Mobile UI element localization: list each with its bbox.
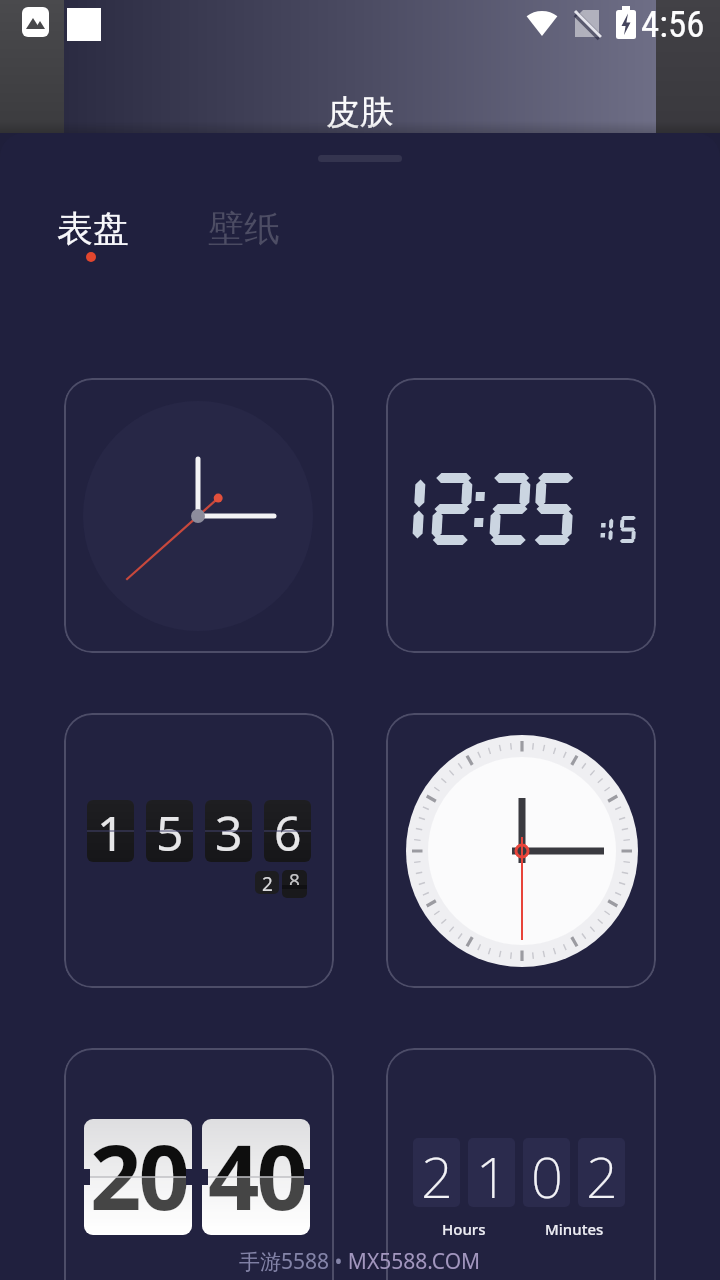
staticText: 表盘 [57, 206, 129, 251]
staticText: Hours [442, 1219, 486, 1239]
staticText: 0 [531, 1138, 563, 1207]
staticText: 2 [262, 871, 273, 894]
staticText: Minutes [545, 1219, 604, 1239]
button[interactable] [386, 378, 656, 653]
staticText: 20 [90, 1119, 187, 1230]
staticText: 2 [586, 1138, 618, 1207]
button[interactable]: 表盘 [48, 203, 138, 253]
staticText: 1 [476, 1138, 508, 1207]
staticText: 6 [274, 800, 302, 862]
staticText: 4:56 [641, 3, 705, 45]
staticText: 2 [421, 1138, 453, 1207]
button[interactable]: 壁纸 [196, 203, 292, 253]
staticText: 手游5588 • MX5588.COM [239, 1247, 481, 1276]
button[interactable]: 1 [64, 713, 334, 988]
staticText: 皮肤 [326, 91, 394, 134]
staticText: 5 [156, 800, 184, 862]
button[interactable]: 2 [386, 1048, 656, 1280]
button[interactable]: 20 [64, 1048, 334, 1280]
staticText: 8 [289, 870, 300, 894]
button[interactable] [386, 713, 656, 988]
staticText: 壁纸 [208, 206, 280, 251]
staticText: 3 [215, 800, 243, 862]
staticText: 1 [97, 800, 125, 862]
staticText: 40 [208, 1119, 305, 1230]
button[interactable] [64, 378, 334, 653]
